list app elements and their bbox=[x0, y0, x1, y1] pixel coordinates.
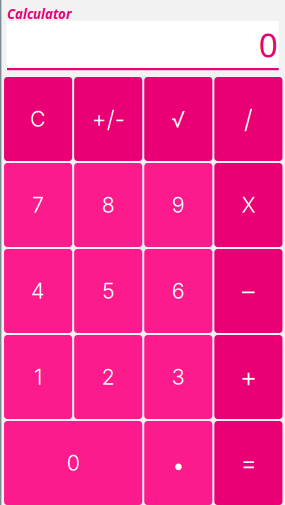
button[interactable]: 7 bbox=[4, 163, 72, 247]
staticText: 4 bbox=[31, 278, 45, 304]
staticText: 7 bbox=[32, 192, 44, 218]
button[interactable]: 9 bbox=[144, 163, 212, 247]
button[interactable]: • bbox=[144, 421, 212, 505]
staticText: 2 bbox=[102, 364, 115, 390]
button[interactable]: X bbox=[214, 163, 282, 247]
staticText: Calculator bbox=[7, 5, 72, 23]
button[interactable]: √ bbox=[144, 77, 212, 161]
button[interactable]: 0 bbox=[4, 421, 142, 505]
button[interactable]: C bbox=[4, 77, 72, 161]
button[interactable]: + bbox=[214, 335, 282, 419]
staticText: / bbox=[244, 104, 253, 134]
staticText: 9 bbox=[172, 192, 185, 218]
button[interactable]: +/- bbox=[74, 77, 142, 161]
staticText: X bbox=[241, 192, 255, 218]
staticText: 3 bbox=[172, 364, 185, 390]
staticText: • bbox=[172, 451, 184, 479]
button[interactable]: 2 bbox=[74, 335, 142, 419]
button[interactable]: 3 bbox=[144, 335, 212, 419]
staticText: + bbox=[240, 361, 257, 393]
staticText: 6 bbox=[172, 278, 185, 304]
button[interactable]: – bbox=[214, 249, 282, 333]
staticText: 5 bbox=[102, 278, 114, 304]
staticText: 8 bbox=[102, 192, 115, 218]
button[interactable]: / bbox=[214, 77, 282, 161]
staticText: – bbox=[242, 276, 255, 306]
staticText: 0 bbox=[67, 450, 80, 476]
button[interactable]: 6 bbox=[144, 249, 212, 333]
staticText: +/- bbox=[92, 105, 125, 133]
button[interactable]: 5 bbox=[74, 249, 142, 333]
staticText: = bbox=[240, 448, 256, 478]
button[interactable]: 4 bbox=[4, 249, 72, 333]
staticText: √ bbox=[171, 105, 185, 133]
staticText: C bbox=[30, 106, 46, 132]
button[interactable]: 1 bbox=[4, 335, 72, 419]
button[interactable]: = bbox=[214, 421, 282, 505]
staticText: 1 bbox=[34, 364, 42, 390]
button[interactable]: 8 bbox=[74, 163, 142, 247]
staticText: 0 bbox=[259, 22, 278, 67]
